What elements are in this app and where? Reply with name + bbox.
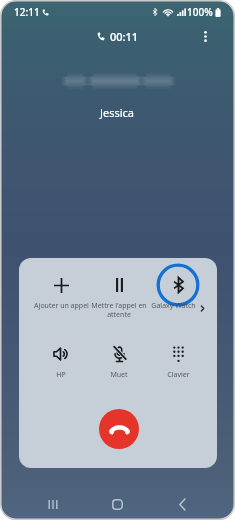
button[interactable]: Recent apps	[33, 490, 73, 518]
button[interactable]: Galaxy Watch	[147, 261, 209, 319]
staticText: Ajouter un appel	[34, 301, 89, 311]
staticText: 12:11	[14, 5, 40, 19]
button[interactable]: Back	[162, 490, 202, 518]
button[interactable]: More options	[194, 25, 216, 47]
button[interactable]: End call	[99, 409, 139, 449]
button[interactable]: Ajouter un appel	[30, 261, 92, 319]
staticText: 100%	[187, 5, 213, 19]
button[interactable]: Mettre l'appel en attente	[88, 261, 150, 319]
staticText: Muet	[110, 370, 128, 380]
staticText: HP	[56, 370, 66, 380]
button[interactable]: HP	[30, 330, 92, 388]
staticText: Galaxy Watch	[151, 301, 196, 311]
button[interactable]: Muet	[88, 330, 150, 388]
staticText: 00:11	[110, 29, 139, 44]
staticText: Jessica	[100, 105, 135, 120]
button[interactable]: Home	[97, 490, 137, 518]
staticText: Mettre l'appel en attente	[91, 301, 147, 319]
button[interactable]: Clavier	[147, 330, 209, 388]
staticText: Clavier	[167, 370, 190, 380]
